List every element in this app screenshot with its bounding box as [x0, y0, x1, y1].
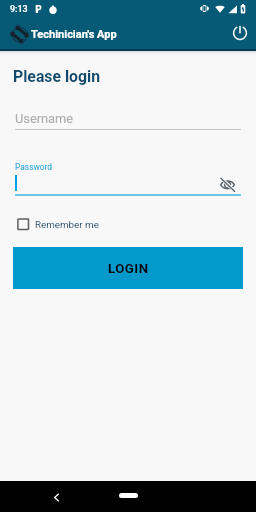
button[interactable]: LOGIN: [13, 247, 243, 289]
staticText: 9:13: [10, 4, 28, 15]
button[interactable]: Home: [119, 493, 138, 498]
staticText: Please login: [13, 67, 101, 86]
button[interactable]: Back: [46, 487, 66, 507]
button[interactable]: Show password: [216, 173, 238, 195]
button[interactable]: Remember me: [17, 215, 99, 233]
staticText: Username: [15, 111, 74, 126]
button[interactable]: Password: [15, 160, 211, 196]
staticText: Remember me: [35, 219, 99, 230]
staticText: Password: [15, 162, 53, 172]
button[interactable]: Username: [15, 107, 241, 131]
button[interactable]: Log out: [227, 20, 252, 45]
staticText: Techinician's App: [31, 28, 117, 41]
staticText: LOGIN: [108, 261, 149, 276]
